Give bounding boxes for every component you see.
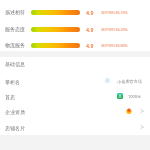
button[interactable]: 企业资质 bbox=[0, 105, 150, 120]
button[interactable]: 首店 1000元 bbox=[0, 90, 150, 105]
button[interactable]: 店铺名片 bbox=[0, 121, 150, 136]
staticText: 小金库官方店 bbox=[117, 79, 143, 84]
staticText: 物流服务 bbox=[5, 42, 25, 48]
button[interactable]: 物流服务 bbox=[0, 39, 150, 55]
button[interactable]: 描述相符 bbox=[0, 6, 150, 22]
staticText: 掌柜名 bbox=[5, 79, 20, 85]
staticText: 高于同行26.66% bbox=[101, 43, 128, 48]
staticText: 服务态度 bbox=[5, 26, 25, 32]
staticText: 4.9 bbox=[86, 42, 94, 49]
staticText: 店铺名片 bbox=[5, 125, 25, 131]
staticText: 描述相符 bbox=[5, 9, 25, 15]
staticText: 4.9 bbox=[86, 9, 94, 16]
staticText: 高于同行34.23% bbox=[101, 27, 128, 32]
staticText: 1000元 bbox=[128, 94, 141, 99]
staticText: 企业资质 bbox=[5, 109, 25, 115]
button[interactable]: 服务态度 bbox=[0, 23, 150, 39]
staticText: 基础信息 bbox=[5, 61, 25, 67]
staticText: 4.9 bbox=[86, 26, 94, 33]
staticText: 首店 bbox=[5, 94, 15, 100]
staticText: 高于同行45.16% bbox=[101, 10, 128, 15]
button[interactable]: 掌柜名 小金库官方店 bbox=[0, 75, 150, 90]
